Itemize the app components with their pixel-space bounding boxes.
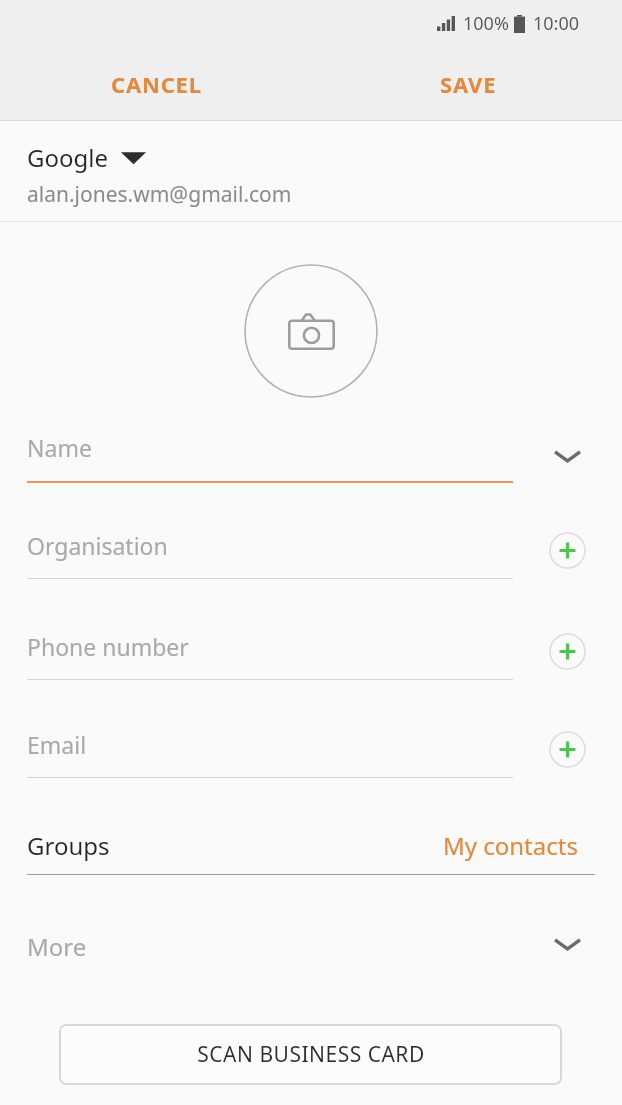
button[interactable]: SCAN BUSINESS CARD	[59, 1024, 562, 1085]
button[interactable]: Add Email	[535, 717, 599, 781]
staticText: Organisation	[27, 530, 168, 561]
button[interactable]	[27, 412, 513, 482]
staticText: Name	[27, 432, 92, 463]
button[interactable]	[27, 709, 513, 779]
button[interactable]	[0, 912, 622, 982]
staticText: More	[27, 930, 87, 963]
button[interactable]: CANCEL	[62, 48, 250, 120]
staticText: CANCEL	[111, 69, 202, 99]
button[interactable]: Add contact photo	[244, 264, 378, 398]
button[interactable]	[0, 812, 622, 876]
button[interactable]: Expand name fields	[535, 424, 599, 488]
button[interactable]	[0, 121, 622, 222]
button[interactable]	[27, 510, 513, 580]
staticText: My contacts	[443, 829, 578, 862]
staticText: Phone number	[27, 631, 189, 662]
button[interactable]: SAVE	[388, 48, 548, 120]
staticText: 10:00	[533, 11, 580, 36]
staticText: 100%	[463, 11, 509, 36]
button[interactable]	[27, 611, 513, 681]
button[interactable]: Show more fields	[535, 912, 599, 976]
staticText: SAVE	[440, 69, 497, 99]
staticText: Groups	[27, 829, 110, 862]
staticText: Email	[27, 729, 87, 760]
button[interactable]: Add Phone number	[535, 619, 599, 683]
button[interactable]: Add Organisation	[535, 518, 599, 582]
staticText: Google	[27, 141, 108, 174]
staticText: alan.jones.wm@gmail.com	[27, 180, 292, 209]
staticText: SCAN BUSINESS CARD	[197, 1040, 425, 1069]
